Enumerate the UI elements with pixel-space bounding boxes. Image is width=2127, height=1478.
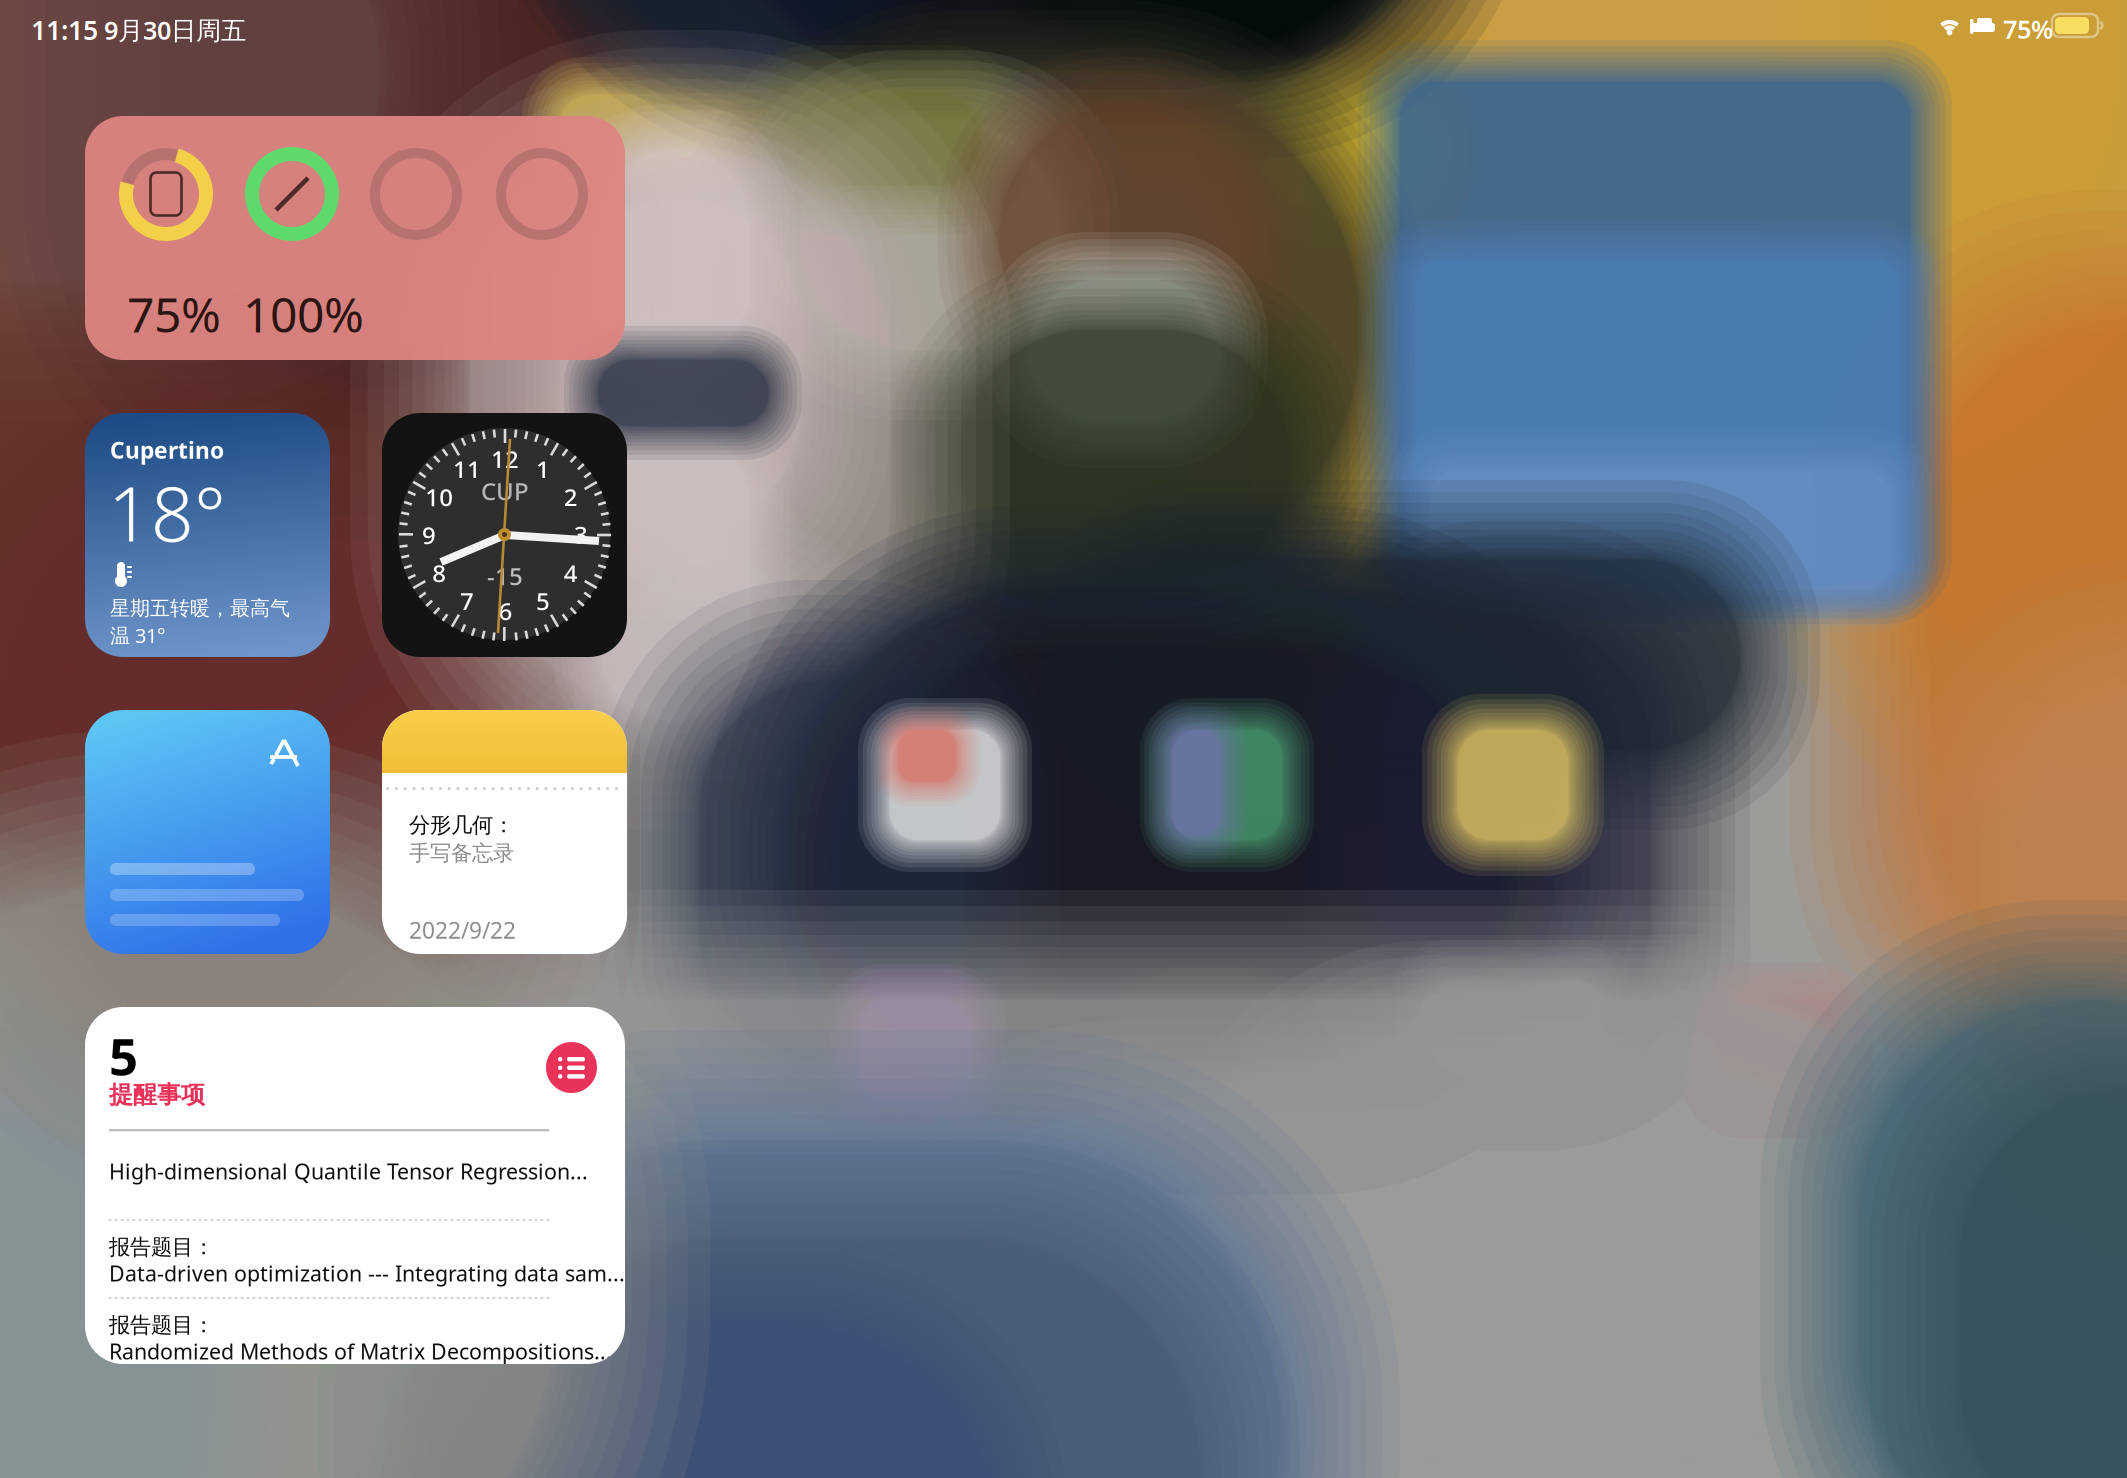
staticText: 分形几何： bbox=[409, 812, 514, 838]
staticText: CUP bbox=[481, 475, 529, 507]
staticText: 报告题目： bbox=[109, 1234, 214, 1260]
staticText: 75% bbox=[127, 282, 221, 346]
staticText: 1 bbox=[536, 453, 550, 485]
staticText: 9月30日周五 bbox=[104, 13, 246, 47]
staticText: 手写备忘录 bbox=[409, 840, 514, 866]
staticText: 2022/9/22 bbox=[409, 915, 516, 945]
staticText: 10 bbox=[425, 481, 453, 513]
staticText: Randomized Methods of Matrix Decompositi… bbox=[109, 1337, 612, 1365]
button[interactable]: Clock, Cupertino bbox=[382, 413, 627, 657]
staticText: 4 bbox=[564, 557, 578, 589]
staticText: 8 bbox=[432, 557, 446, 589]
staticText: -15 bbox=[487, 560, 523, 592]
staticText: 75% bbox=[2003, 12, 2053, 46]
button[interactable]: Batteries bbox=[85, 116, 625, 360]
staticText: 18° bbox=[108, 463, 226, 562]
staticText: 5 bbox=[109, 1022, 138, 1089]
staticText: Data-driven optimization --- Integrating… bbox=[109, 1259, 625, 1287]
staticText: 提醒事项 bbox=[109, 1080, 205, 1109]
staticText: 星期五转暖，最高气 bbox=[110, 596, 290, 621]
staticText: 11 bbox=[453, 453, 481, 485]
button[interactable]: Weather, Cupertino, 18 degrees bbox=[85, 413, 330, 657]
staticText: 9 bbox=[422, 519, 436, 551]
staticText: 温 31° bbox=[110, 622, 166, 649]
staticText: 2 bbox=[564, 481, 578, 513]
button[interactable]: 分形几何： bbox=[382, 710, 627, 954]
staticText: Cupertino bbox=[110, 435, 224, 465]
staticText: 100% bbox=[243, 282, 364, 346]
staticText: 6 bbox=[498, 595, 512, 627]
button[interactable]: App Store bbox=[85, 710, 330, 954]
staticText: 3 bbox=[574, 518, 588, 550]
staticText: 11:15 bbox=[31, 12, 98, 47]
staticText: 报告题目： bbox=[109, 1312, 214, 1338]
staticText: 12 bbox=[491, 443, 519, 475]
staticText: 7 bbox=[460, 585, 474, 617]
staticText: High-dimensional Quantile Tensor Regress… bbox=[109, 1157, 588, 1185]
staticText: 5 bbox=[536, 585, 550, 617]
button[interactable]: 5 bbox=[85, 1007, 625, 1364]
